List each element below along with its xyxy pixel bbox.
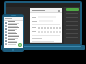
- button[interactable]: Close: [4, 1, 82, 46]
- button[interactable]: [4, 27, 23, 30]
- button[interactable]: Compose: [2, 14, 24, 52]
- button[interactable]: [4, 33, 23, 36]
- button[interactable]: [4, 24, 23, 27]
- button[interactable]: Compose: [18, 43, 22, 47]
- button[interactable]: [4, 21, 23, 24]
- button[interactable]: [4, 30, 23, 33]
- button[interactable]: [4, 36, 23, 39]
- button[interactable]: [4, 39, 23, 42]
- button[interactable]: [4, 42, 23, 45]
- button[interactable]: [66, 8, 79, 11]
- button[interactable]: Close: [30, 8, 62, 43]
